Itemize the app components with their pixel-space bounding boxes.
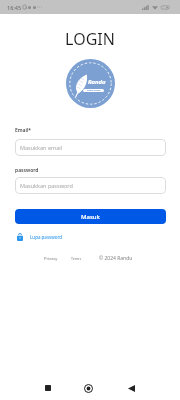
- button[interactable]: Home: [84, 384, 93, 393]
- button[interactable]: Lupa password: [17, 233, 62, 241]
- button[interactable]: Masuk: [15, 209, 166, 224]
- staticText: Randu: [88, 78, 106, 86]
- button[interactable]: Privacy: [44, 256, 58, 261]
- button[interactable]: Masukkan email: [15, 139, 166, 156]
- button[interactable]: Masukkan password: [15, 177, 166, 194]
- staticText: password: [15, 167, 39, 174]
- staticText: Masukkan password: [20, 182, 73, 189]
- staticText: AGRO CRAFT: [87, 89, 101, 92]
- staticText: Email*: [15, 127, 32, 134]
- staticText: 16:45: [7, 4, 22, 11]
- staticText: Masuk: [81, 213, 100, 221]
- button[interactable]: Back: [128, 385, 135, 392]
- staticText: Lupa password: [30, 234, 62, 240]
- staticText: © 2024 Randu: [99, 255, 133, 262]
- button[interactable]: Terms: [71, 256, 82, 261]
- staticText: LOGIN: [0, 28, 180, 50]
- staticText: Masukkan email: [20, 144, 63, 151]
- button[interactable]: Recent apps: [45, 385, 51, 391]
